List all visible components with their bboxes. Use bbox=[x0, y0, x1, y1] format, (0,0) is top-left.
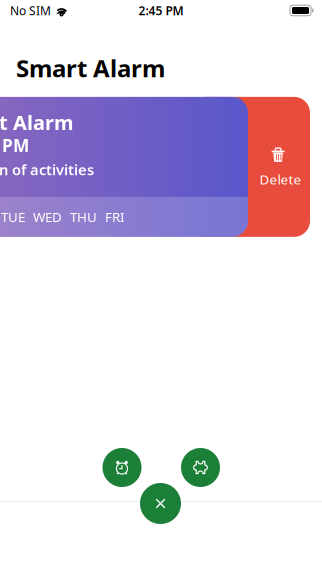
staticText: No SIM bbox=[10, 2, 51, 18]
staticText: THU bbox=[70, 208, 97, 226]
staticText: 2:45 PM bbox=[138, 2, 183, 18]
button[interactable]: Delete bbox=[190, 97, 310, 237]
staticText: WED bbox=[33, 208, 62, 226]
button[interactable]: New alarm bbox=[102, 448, 141, 487]
staticText: FRI bbox=[105, 208, 125, 226]
button[interactable]: Close bbox=[140, 483, 181, 524]
button[interactable]: New challenge bbox=[181, 448, 220, 487]
staticText: Smart Alarm bbox=[0, 109, 74, 135]
staticText: TUE bbox=[1, 208, 25, 226]
staticText: Smart Alarm bbox=[16, 52, 165, 84]
staticText: Detection of activities bbox=[0, 160, 94, 179]
staticText: 7:30 PM bbox=[0, 134, 29, 157]
staticText: Delete bbox=[259, 170, 301, 188]
